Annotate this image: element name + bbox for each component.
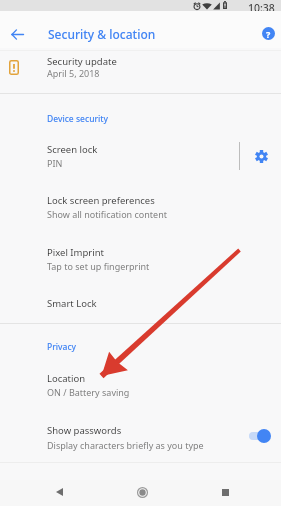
staticText: Show all notification content: [47, 208, 167, 220]
staticText: Display characters briefly as you type: [47, 439, 204, 451]
button[interactable]: Show passwords: [0, 420, 281, 456]
staticText: ?: [266, 28, 271, 40]
staticText: Smart Lock: [47, 297, 97, 310]
button[interactable]: Smart Lock: [0, 289, 281, 319]
button[interactable]: Pixel Imprint: [0, 238, 281, 278]
staticText: ON / Battery saving: [47, 386, 130, 398]
button[interactable]: Screen lock settings: [244, 134, 281, 178]
button[interactable]: Back: [47, 480, 71, 506]
button[interactable]: Location: [0, 364, 281, 404]
button[interactable]: Lock screen preferences: [0, 186, 281, 226]
staticText: April 5, 2018: [47, 67, 100, 79]
staticText: Privacy: [47, 341, 77, 353]
staticText: PIN: [47, 157, 63, 169]
button[interactable]: Navigate up: [5, 22, 29, 46]
staticText: Security update: [47, 55, 117, 68]
staticText: 10:38: [248, 1, 275, 12]
button[interactable]: Home: [130, 480, 154, 506]
staticText: Device security: [47, 113, 109, 125]
staticText: Show passwords: [47, 424, 122, 437]
staticText: Location: [47, 372, 86, 385]
button[interactable]: Help: [256, 21, 281, 46]
button[interactable]: Recent apps: [213, 480, 237, 506]
staticText: Security & location: [48, 26, 156, 42]
button[interactable]: Security update: [0, 48, 281, 93]
staticText: Lock screen preferences: [47, 194, 155, 207]
staticText: Pixel Imprint: [47, 246, 104, 259]
staticText: Tap to set up fingerprint: [47, 260, 150, 272]
button[interactable]: Screen lock: [0, 134, 239, 178]
staticText: Screen lock: [47, 143, 98, 156]
